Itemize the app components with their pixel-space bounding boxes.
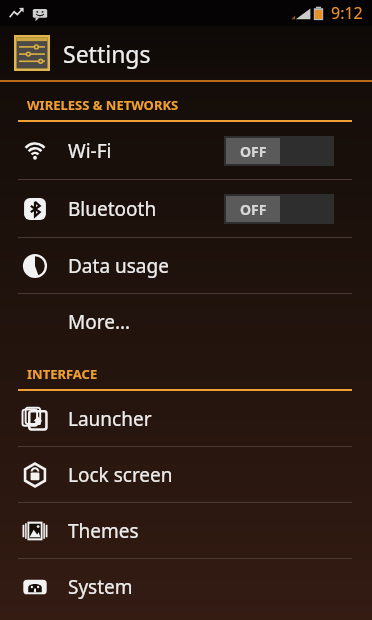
button[interactable]: Lock screen	[0, 447, 372, 502]
other: Bluetooth	[22, 196, 48, 222]
button[interactable]: Settings	[0, 26, 372, 80]
button[interactable]: Bluetooth	[0, 180, 372, 237]
staticText: Data usage	[68, 253, 169, 279]
button[interactable]: Off toggle	[224, 136, 334, 166]
staticText: INTERFACE	[27, 365, 98, 383]
staticText: System	[68, 574, 133, 600]
button[interactable]: Launcher	[0, 391, 372, 446]
other: Wi-Fi	[22, 138, 48, 164]
staticText: More…	[68, 309, 130, 335]
other: System	[22, 574, 48, 600]
other: Launcher	[22, 406, 48, 432]
button[interactable]: Wi-Fi	[0, 122, 372, 179]
staticText: Launcher	[68, 406, 152, 432]
button[interactable]: Themes	[0, 503, 372, 558]
staticText: OFF	[240, 142, 267, 161]
staticText: Themes	[68, 518, 139, 544]
other: Themes	[22, 518, 48, 544]
staticText: Bluetooth	[68, 196, 157, 222]
other: Data usage	[22, 253, 48, 279]
other: Lock screen	[22, 462, 48, 488]
button[interactable]: Data usage	[0, 238, 372, 293]
button[interactable]: More…	[0, 294, 372, 349]
staticText: 9:12	[331, 2, 363, 24]
staticText: OFF	[240, 200, 267, 219]
button[interactable]: Off toggle	[224, 194, 334, 224]
staticText: Settings	[63, 38, 151, 69]
staticText: Lock screen	[68, 462, 173, 488]
button[interactable]: System	[0, 559, 372, 614]
staticText: Wi-Fi	[68, 138, 112, 164]
staticText: WIRELESS & NETWORKS	[27, 96, 179, 114]
